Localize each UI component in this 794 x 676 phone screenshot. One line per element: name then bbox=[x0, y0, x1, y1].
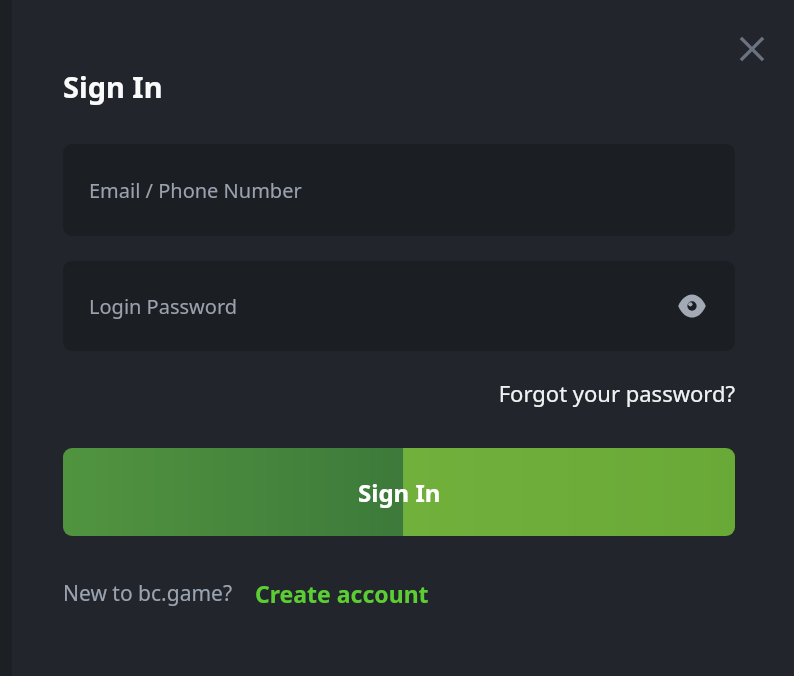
staticText: Login Password bbox=[89, 293, 238, 320]
button[interactable]: Sign In bbox=[63, 448, 735, 536]
staticText: Forgot your password? bbox=[498, 378, 735, 408]
button[interactable]: Forgot your password? bbox=[424, 373, 735, 413]
button[interactable]: Show password bbox=[670, 284, 714, 328]
button[interactable]: Close bbox=[726, 23, 778, 75]
staticText: Sign In bbox=[358, 476, 441, 509]
staticText: Create account bbox=[255, 578, 429, 609]
button[interactable]: Login Password bbox=[63, 261, 735, 351]
button[interactable]: Create account bbox=[255, 578, 429, 609]
staticText: Email / Phone Number bbox=[89, 177, 302, 204]
staticText: New to bc.game? bbox=[63, 579, 233, 608]
button[interactable]: Email / Phone Number bbox=[63, 144, 735, 236]
staticText: Sign In bbox=[63, 67, 163, 106]
